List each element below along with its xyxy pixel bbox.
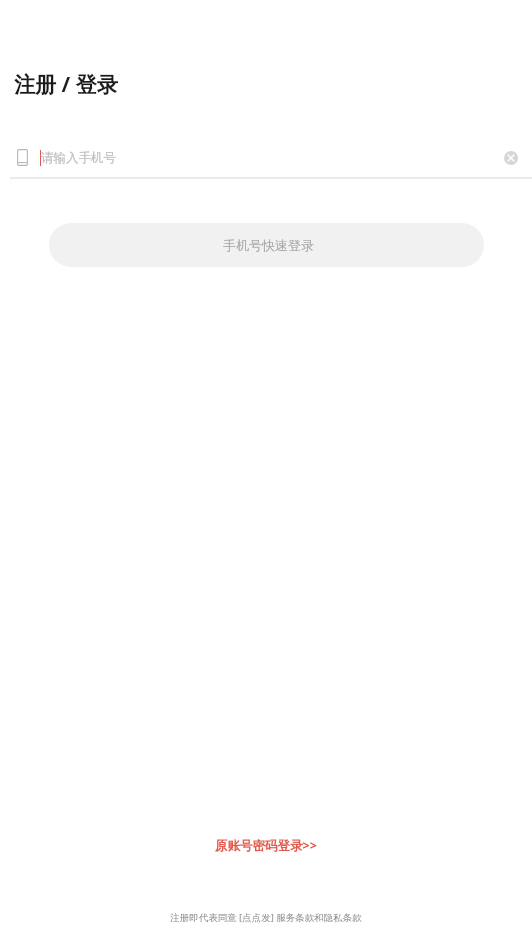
staticText: 注册即代表同意 [点点发] 服务条款和隐私条款 bbox=[170, 911, 362, 924]
button[interactable]: 注册即代表同意 [点点发] 服务条款和隐私条款 bbox=[160, 908, 372, 927]
button[interactable]: 手机号快速登录 bbox=[49, 223, 484, 267]
button[interactable]: 请输入手机号 bbox=[0, 141, 498, 174]
button[interactable]: Clear phone number bbox=[498, 145, 524, 171]
button[interactable]: 原账号密码登录>> bbox=[205, 834, 327, 857]
staticText: 原账号密码登录>> bbox=[215, 837, 317, 854]
staticText: 注册 / 登录 bbox=[14, 70, 118, 99]
staticText: 手机号快速登录 bbox=[223, 237, 314, 253]
staticText: 请输入手机号 bbox=[41, 150, 116, 166]
